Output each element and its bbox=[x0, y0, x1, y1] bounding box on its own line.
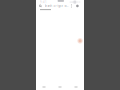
staticText: Search or type web address bbox=[44, 4, 70, 8]
button[interactable]: More options bbox=[70, 4, 73, 8]
staticText: 9:41 bbox=[40, 0, 47, 4]
button[interactable]: Account bbox=[76, 4, 79, 8]
